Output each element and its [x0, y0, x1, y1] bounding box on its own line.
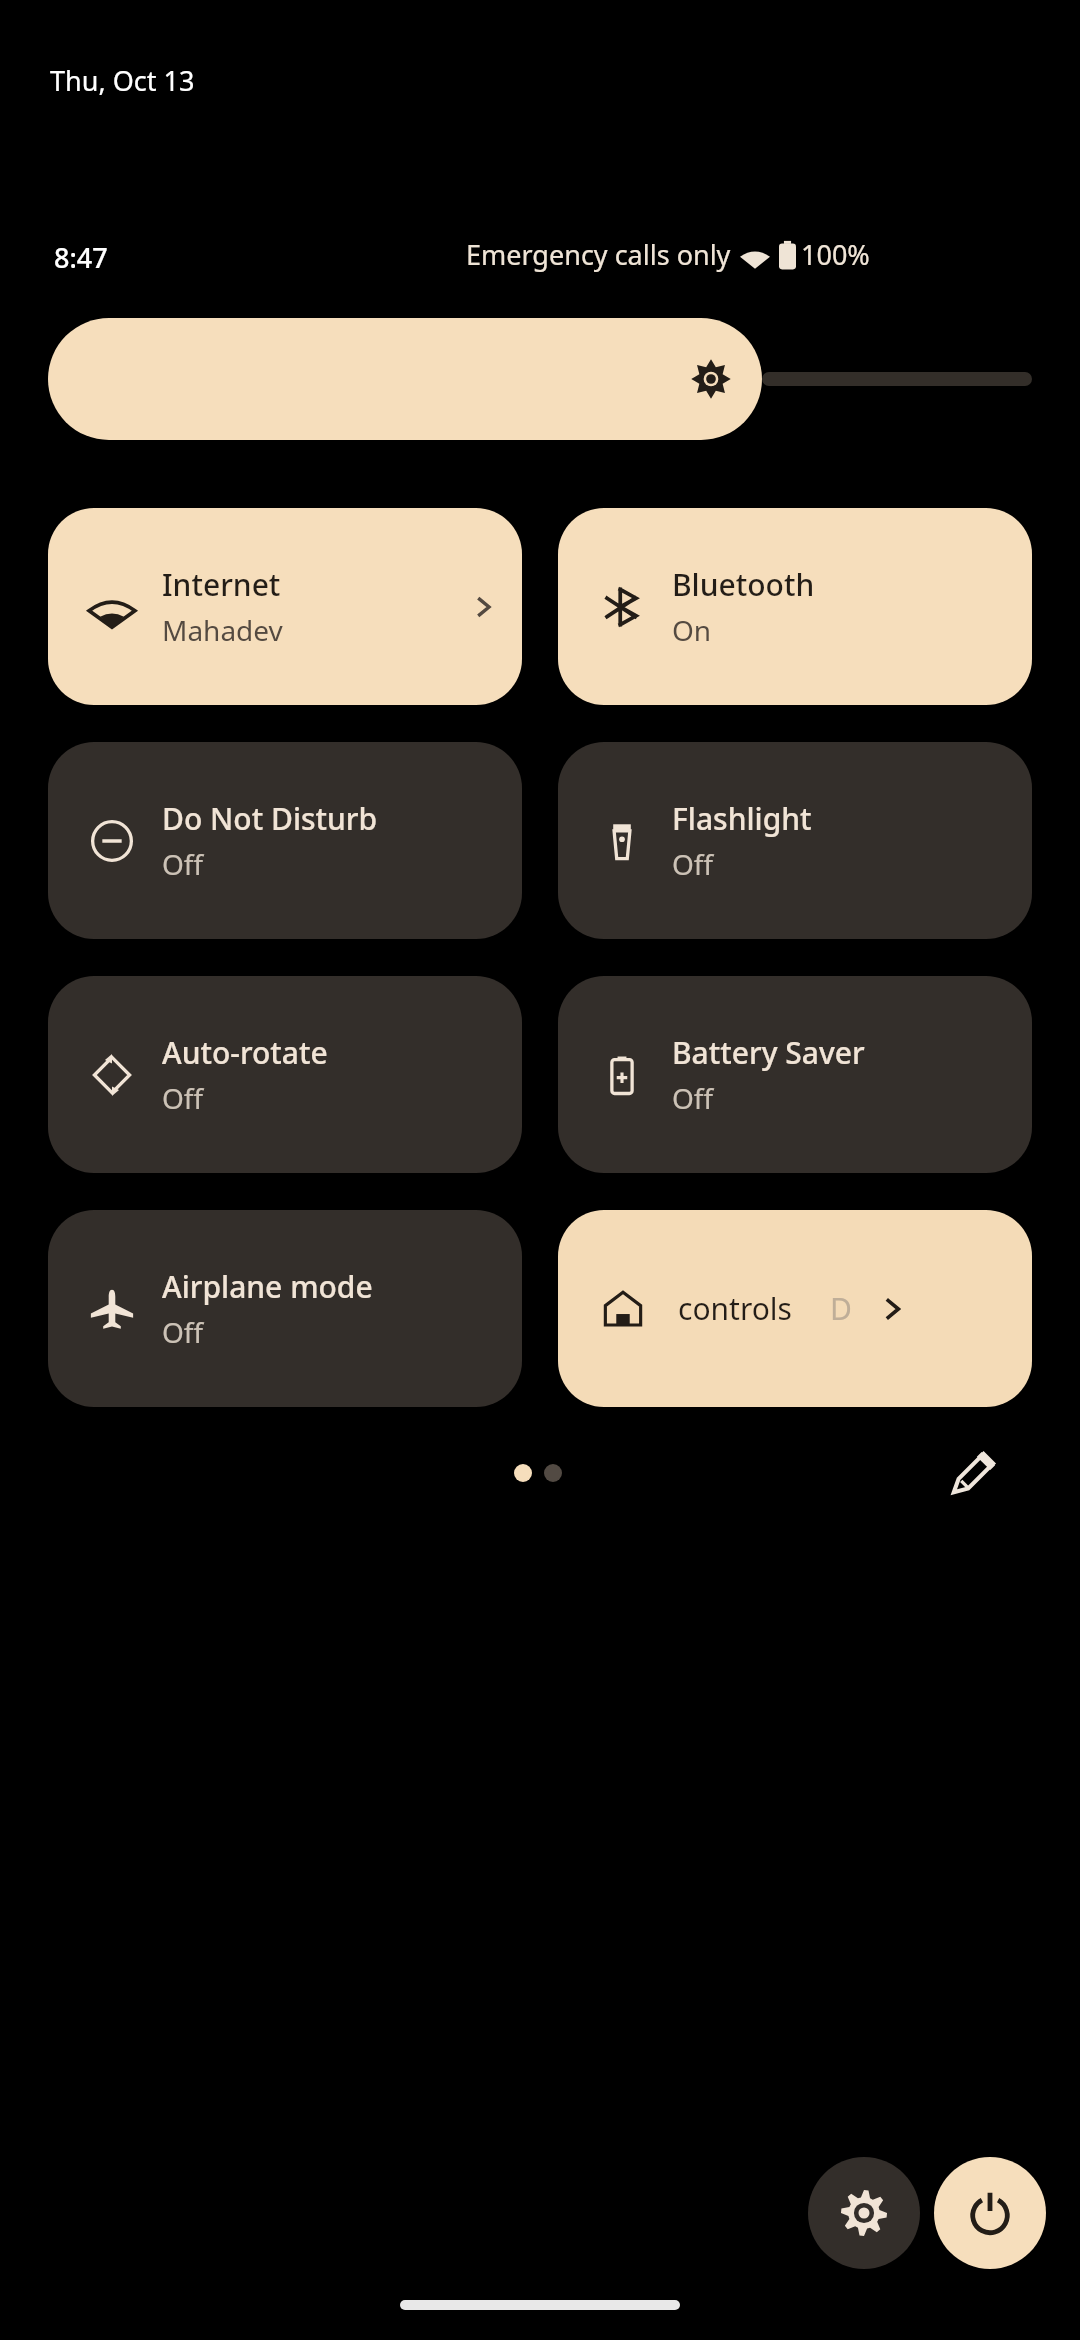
staticText: Airplane mode [162, 1266, 373, 1307]
staticText: Mahadev [162, 611, 283, 649]
staticText: Do Not Disturb [162, 798, 378, 839]
button[interactable]: Bluetooth [558, 508, 1032, 705]
staticText: Off [672, 1079, 714, 1117]
button[interactable]: Flashlight [558, 742, 1032, 939]
staticText: Battery Saver [672, 1032, 865, 1073]
staticText: Flashlight [672, 798, 812, 839]
staticText: 8:47 [54, 239, 108, 276]
staticText: On [672, 611, 712, 649]
staticText: controls [678, 1288, 792, 1329]
staticText: Off [162, 1313, 204, 1351]
button[interactable]: Edit tiles [930, 1430, 1016, 1516]
staticText: Off [672, 845, 714, 883]
staticText: 100% [801, 236, 870, 273]
button[interactable] [48, 318, 1032, 440]
button[interactable]: Auto-rotate [48, 976, 522, 1173]
button[interactable]: Power [934, 2157, 1046, 2269]
staticText: Thu, Oct 13 [50, 62, 195, 99]
button[interactable]: Do Not Disturb [48, 742, 522, 939]
staticText: Bluetooth [672, 564, 815, 605]
button[interactable]: Internet [48, 508, 522, 705]
button[interactable]: Settings [808, 2157, 920, 2269]
button[interactable]: Airplane mode [48, 1210, 522, 1407]
staticText: Internet [162, 564, 281, 605]
staticText: Auto-rotate [162, 1032, 328, 1073]
staticText: D [830, 1288, 852, 1329]
staticText: Off [162, 845, 204, 883]
button[interactable]: controls [558, 1210, 1032, 1407]
staticText: Emergency calls only [466, 236, 731, 273]
button[interactable]: Battery Saver [558, 976, 1032, 1173]
staticText: Off [162, 1079, 204, 1117]
